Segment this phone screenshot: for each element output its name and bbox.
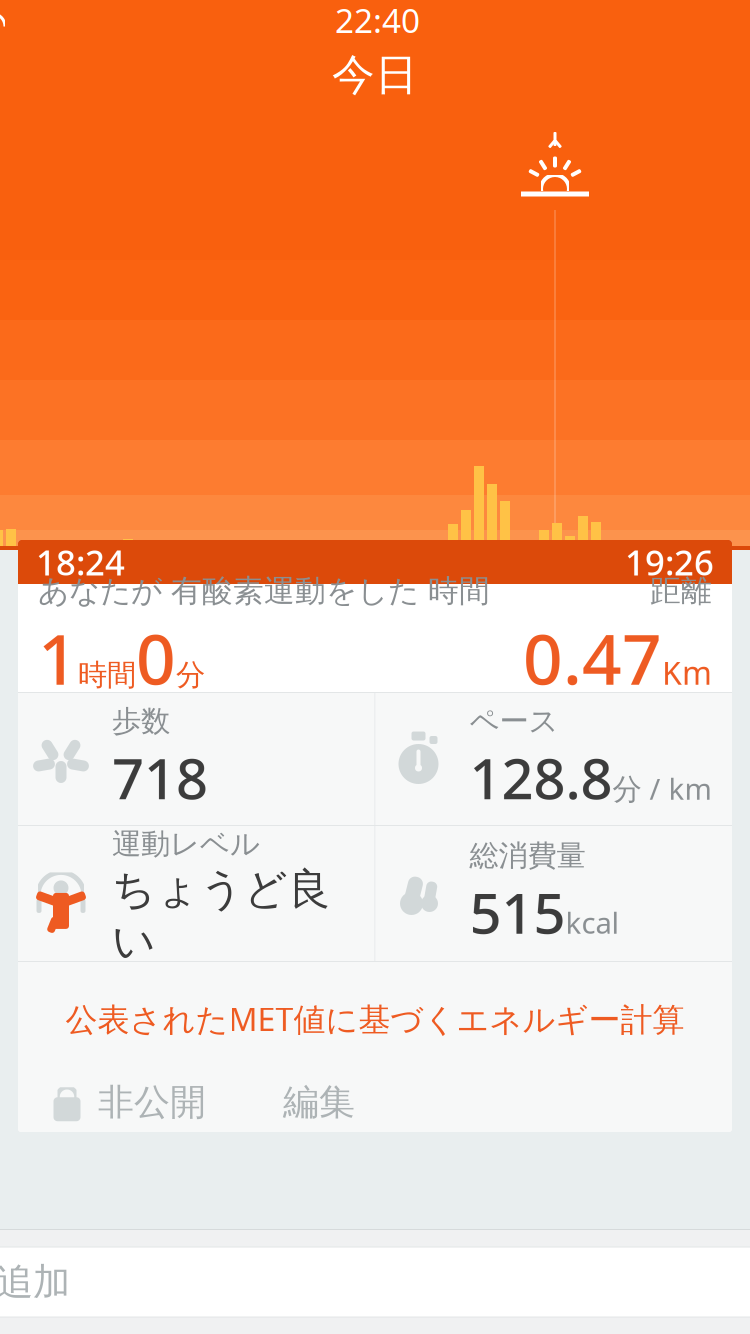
staticText: 128.8 (469, 740, 612, 815)
staticText: 分 / km (612, 769, 711, 808)
button[interactable]: 公表されたMET値に基づくエネルギー計算 (18, 982, 732, 1056)
button[interactable]: 編集 (283, 1072, 355, 1132)
staticText: 時間 (78, 657, 136, 693)
button[interactable]: 非公開 (18, 1072, 206, 1132)
button[interactable]: 運動レベル (18, 826, 374, 961)
staticText: 0 (136, 612, 176, 704)
staticText: 718 (112, 740, 208, 815)
staticText: 総消費量 (469, 838, 585, 874)
staticText: 距離 (650, 572, 712, 610)
staticText: 運動レベル (112, 826, 260, 862)
staticText: ちょうど良い (112, 863, 331, 968)
staticText: 19:26 (625, 539, 714, 585)
staticText: コメントの追加 (0, 1259, 70, 1305)
staticText: 歩数 (112, 703, 170, 739)
button[interactable]: コメントの追加 (0, 1247, 750, 1317)
staticText: 非公開 (98, 1080, 206, 1124)
button[interactable]: 歩数 (18, 693, 374, 825)
button[interactable]: ペース (375, 693, 732, 825)
button[interactable]: 総消費量 (375, 826, 732, 961)
staticText: あなたが 有酸素運動をした 時間 (38, 572, 490, 610)
staticText: 公表されたMET値に基づくエネルギー計算 (65, 998, 684, 1040)
staticText: 0.47 (523, 612, 662, 704)
staticText: 1 (38, 612, 78, 704)
staticText: 今日 (332, 49, 418, 101)
staticText: ペース (469, 703, 558, 739)
staticText: 分 (176, 657, 205, 693)
staticText: 18:24 (36, 539, 125, 585)
staticText: 22:40 (335, 0, 420, 42)
staticText: kcal (565, 903, 619, 942)
staticText: 515 (469, 875, 565, 949)
staticText: Km (662, 651, 712, 694)
staticText: 編集 (283, 1080, 355, 1124)
